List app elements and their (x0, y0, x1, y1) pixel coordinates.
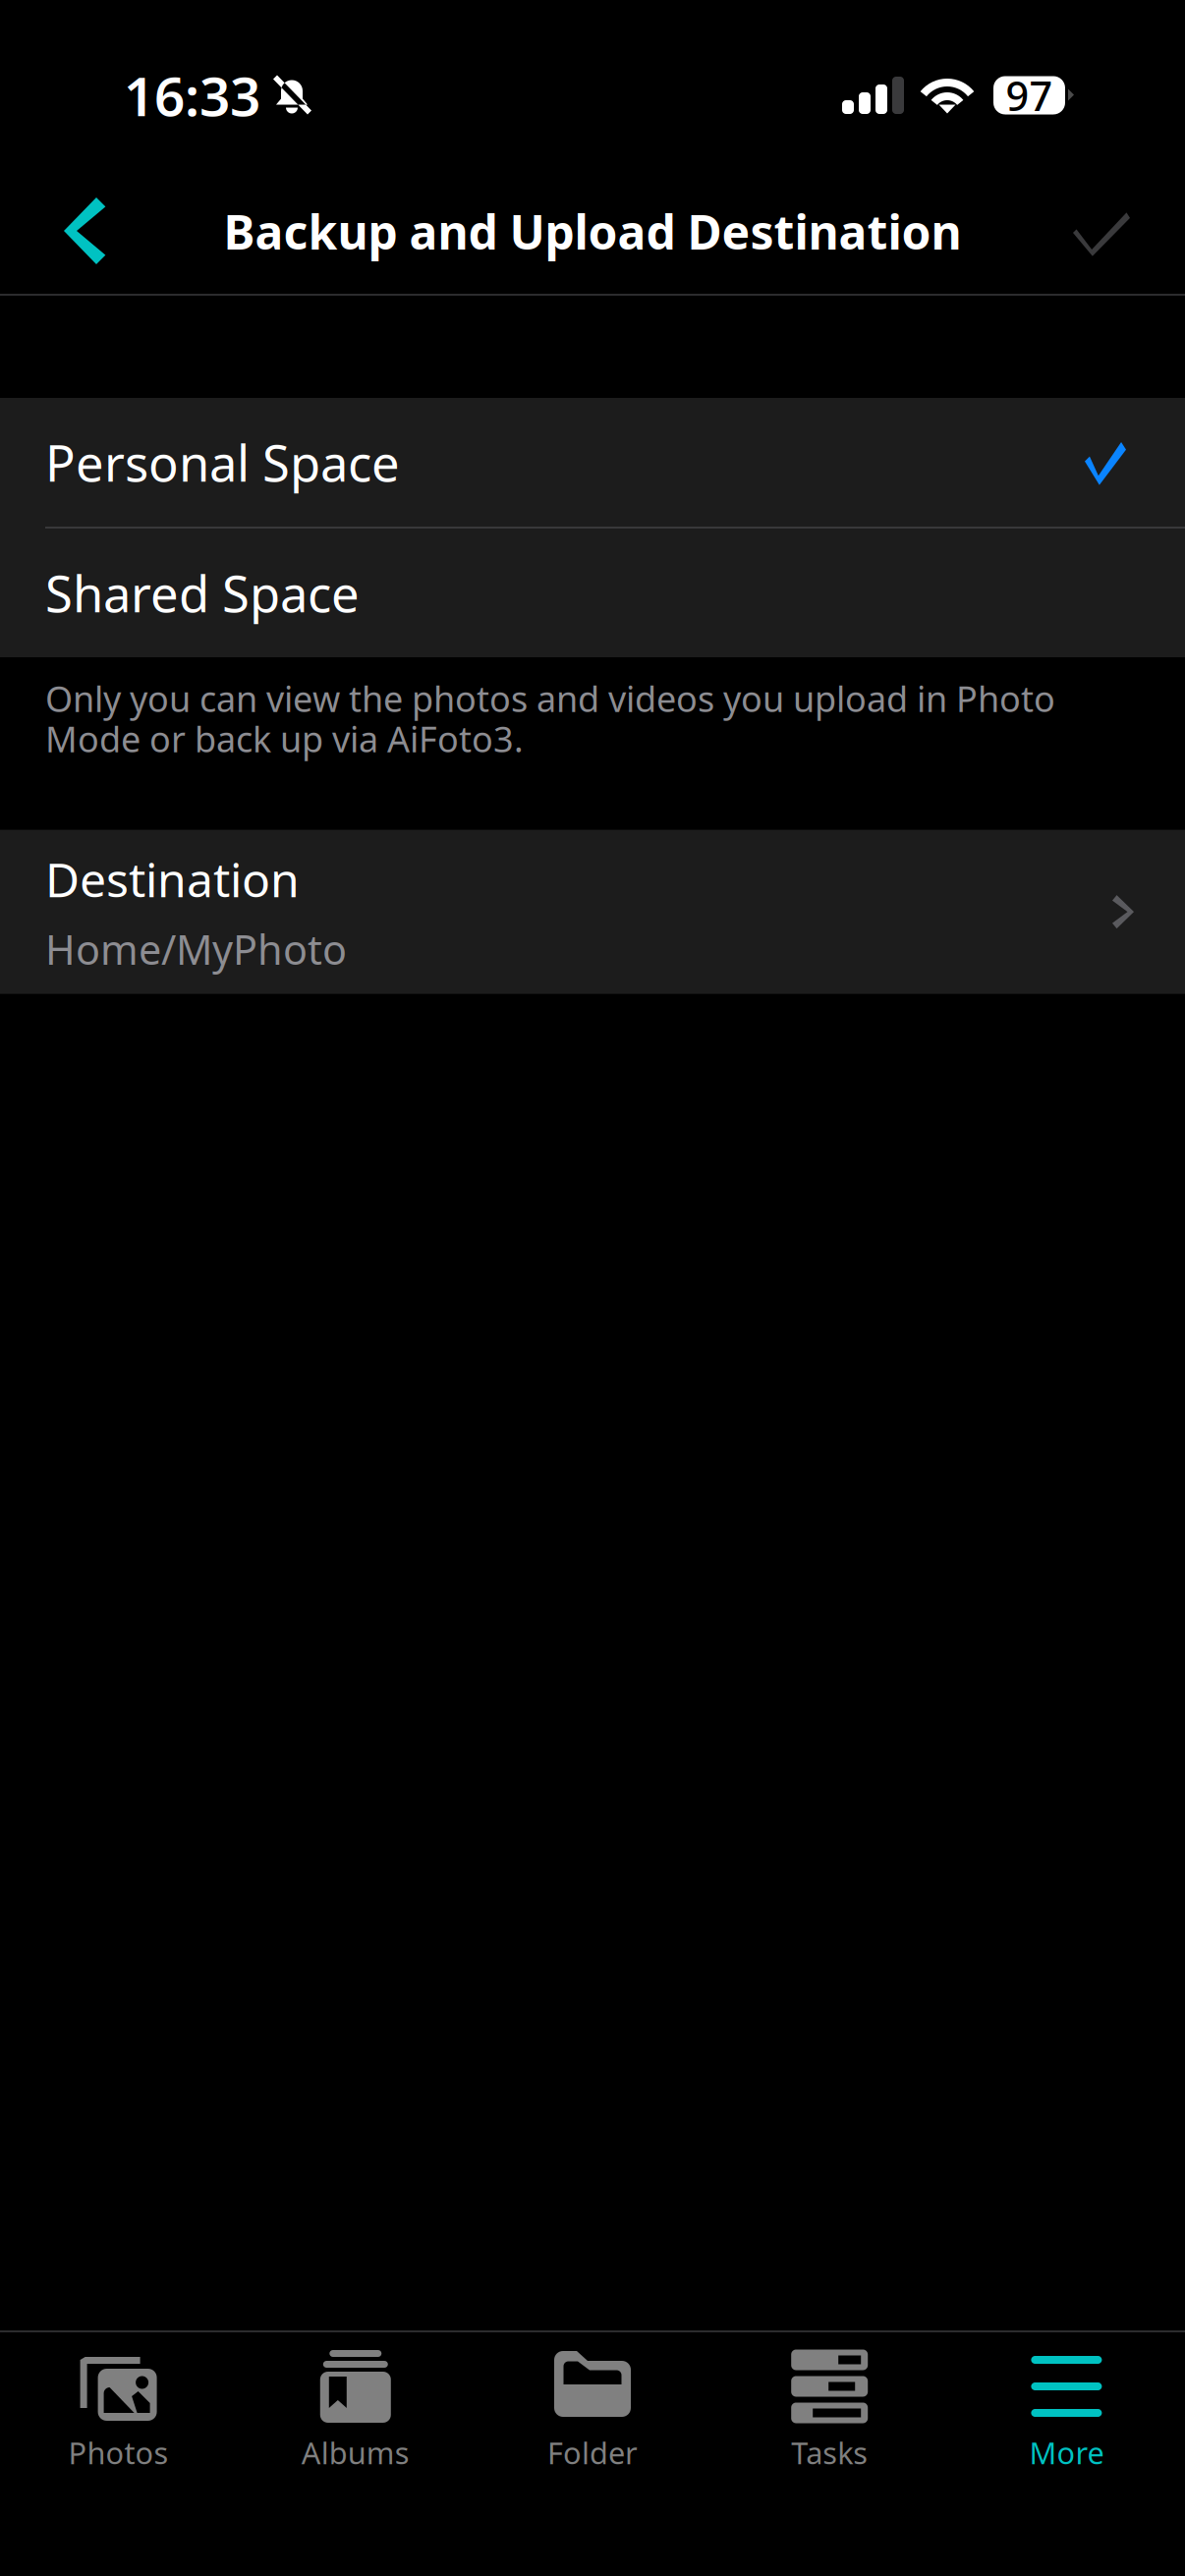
staticText: 97 (1006, 68, 1053, 122)
button[interactable]: Shared Space (0, 529, 1185, 657)
staticText: Destination (45, 848, 300, 910)
button[interactable]: Albums (237, 2330, 474, 2576)
button[interactable]: Done (1018, 167, 1185, 296)
staticText: Folder (547, 2433, 638, 2473)
staticText: Home/MyPhoto (45, 922, 347, 976)
staticText: Only you can view the photos and videos … (45, 675, 1055, 762)
staticText: Shared Space (45, 560, 360, 626)
button[interactable]: Destination (0, 830, 1185, 994)
button[interactable]: More (948, 2330, 1185, 2576)
button[interactable]: Folder (474, 2330, 711, 2576)
staticText: Tasks (791, 2433, 868, 2473)
staticText: Photos (68, 2433, 169, 2473)
button[interactable]: Personal Space (0, 398, 1185, 527)
staticText: 16:33 (124, 60, 260, 131)
button[interactable]: Photos (0, 2330, 237, 2576)
staticText: Personal Space (45, 429, 400, 495)
button[interactable]: Tasks (711, 2330, 948, 2576)
staticText: Backup and Upload Destination (224, 200, 961, 263)
button[interactable]: Back (0, 167, 173, 296)
staticText: Albums (301, 2433, 410, 2473)
staticText: More (1029, 2433, 1104, 2473)
